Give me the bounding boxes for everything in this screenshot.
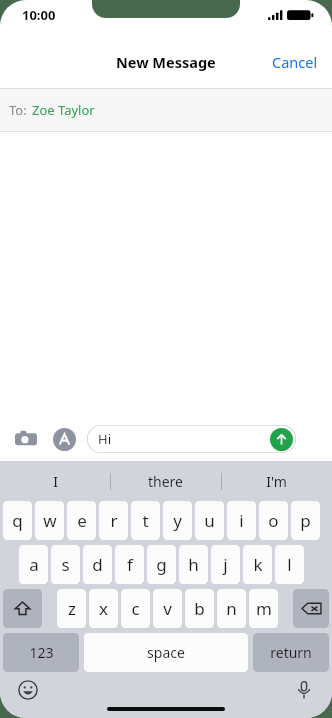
button[interactable]: there [110, 461, 221, 501]
staticText: s [61, 553, 70, 576]
button[interactable]: Emoji [16, 678, 40, 702]
staticText: o [268, 509, 279, 532]
staticText: w [43, 509, 57, 532]
button[interactable]: To: [0, 89, 332, 131]
button[interactable]: Hi [87, 425, 296, 453]
button[interactable]: Shift [3, 589, 42, 628]
staticText: a [29, 553, 39, 576]
staticText: z [68, 597, 76, 620]
staticText: e [77, 509, 87, 532]
button[interactable]: I'm [221, 461, 332, 501]
button[interactable]: q [3, 501, 32, 540]
staticText: f [127, 553, 133, 576]
staticText: 10:00 [22, 6, 56, 24]
button[interactable]: Cancel [258, 44, 332, 80]
staticText: n [226, 597, 237, 620]
button[interactable]: k [243, 545, 272, 584]
staticText: t [142, 509, 149, 532]
staticText: b [194, 597, 205, 620]
staticText: h [188, 553, 199, 576]
button[interactable]: c [121, 589, 150, 628]
staticText: Hi [98, 430, 111, 448]
staticText: New Message [116, 52, 216, 72]
staticText: x [99, 597, 108, 620]
staticText: r [110, 509, 118, 532]
button[interactable]: y [163, 501, 192, 540]
staticText: I'm [266, 472, 287, 491]
button[interactable]: h [179, 545, 208, 584]
staticText: j [223, 553, 228, 576]
button[interactable]: z [57, 589, 86, 628]
button[interactable]: r [99, 501, 128, 540]
staticText: I [53, 472, 58, 491]
button[interactable]: e [67, 501, 96, 540]
button[interactable]: Backspace [293, 589, 329, 628]
staticText: k [253, 553, 263, 576]
button[interactable]: w [35, 501, 64, 540]
staticText: l [287, 553, 292, 576]
button[interactable]: v [153, 589, 182, 628]
staticText: g [156, 553, 167, 576]
button[interactable]: l [275, 545, 304, 584]
button[interactable]: return [253, 633, 329, 672]
staticText: y [173, 509, 182, 532]
staticText: To: [9, 101, 27, 119]
staticText: q [12, 509, 23, 532]
staticText: there [148, 472, 183, 491]
staticText: u [204, 509, 215, 532]
button[interactable]: u [195, 501, 224, 540]
staticText: return [270, 643, 312, 662]
staticText: Zoe Taylor [32, 101, 95, 119]
button[interactable]: Camera [12, 425, 40, 453]
button[interactable]: n [217, 589, 246, 628]
staticText: p [300, 509, 311, 532]
button[interactable]: i [227, 501, 256, 540]
button[interactable]: Dictation [292, 678, 316, 702]
button[interactable]: d [83, 545, 112, 584]
button[interactable]: a [19, 545, 48, 584]
button[interactable]: p [291, 501, 320, 540]
staticText: Cancel [272, 52, 318, 72]
button[interactable]: I [0, 461, 110, 501]
button[interactable]: 123 [3, 633, 79, 672]
button[interactable]: t [131, 501, 160, 540]
button[interactable]: g [147, 545, 176, 584]
button[interactable]: x [89, 589, 118, 628]
button[interactable]: Send [270, 428, 293, 451]
button[interactable]: j [211, 545, 240, 584]
button[interactable]: m [249, 589, 278, 628]
staticText: 123 [29, 643, 54, 662]
button[interactable]: App Store [50, 425, 78, 453]
staticText: d [92, 553, 103, 576]
staticText: v [163, 597, 172, 620]
staticText: m [256, 597, 272, 620]
staticText: c [131, 597, 140, 620]
button[interactable]: o [259, 501, 288, 540]
button[interactable]: s [51, 545, 80, 584]
button[interactable]: b [185, 589, 214, 628]
button[interactable]: space [84, 633, 248, 672]
staticText: space [147, 643, 185, 662]
staticText: i [239, 509, 244, 532]
button[interactable]: f [115, 545, 144, 584]
